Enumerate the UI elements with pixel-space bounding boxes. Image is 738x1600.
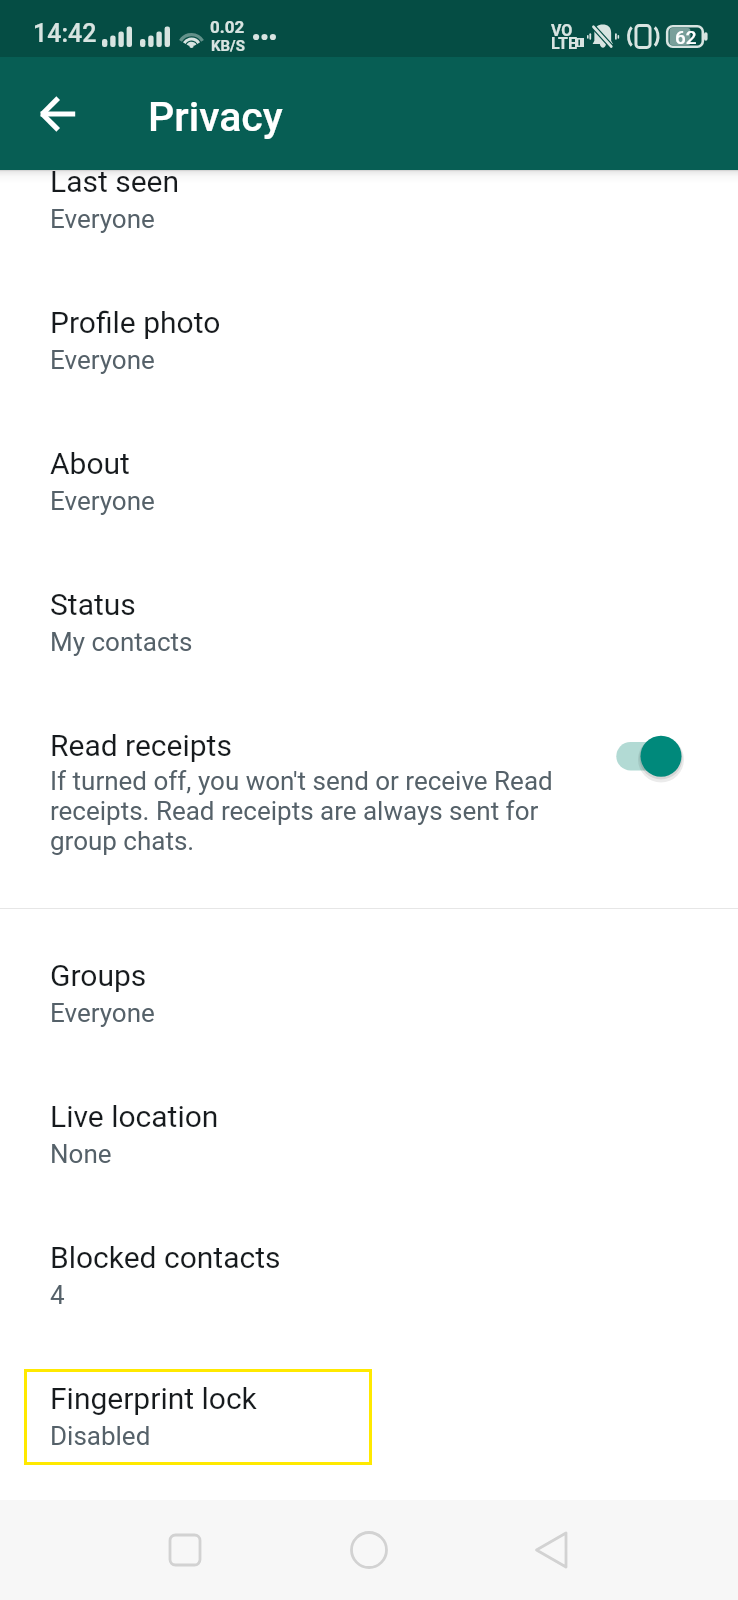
staticText: Disabled [50, 1421, 151, 1451]
staticText: Privacy [148, 93, 283, 141]
staticText: 62 [675, 26, 697, 48]
staticText: Blocked contacts [50, 1240, 281, 1275]
button[interactable]: Read receipts [0, 728, 738, 856]
staticText: 0.02 [210, 17, 245, 37]
button[interactable]: Blocked contacts [0, 1240, 738, 1310]
button[interactable]: Read receipts toggle [612, 728, 692, 784]
staticText: Everyone [50, 204, 155, 234]
staticText: Last seen [50, 164, 180, 199]
button[interactable]: Back [37, 74, 117, 154]
button[interactable]: Last seen [0, 164, 738, 234]
staticText: 4 [50, 1280, 65, 1310]
staticText: 14:42 [33, 19, 97, 48]
button[interactable]: Back [518, 1515, 588, 1585]
staticText: Groups [50, 958, 147, 993]
staticText: Read receipts [50, 728, 232, 763]
staticText: About [50, 446, 130, 481]
button[interactable]: About [0, 446, 738, 516]
button[interactable]: Live location [0, 1099, 738, 1169]
staticText: VO [551, 21, 573, 40]
staticText: If turned off, you won't send or receive… [50, 766, 558, 856]
staticText: Status [50, 587, 136, 622]
staticText: Everyone [50, 486, 155, 516]
staticText: My contacts [50, 627, 193, 657]
button[interactable]: Recent apps [150, 1515, 220, 1585]
staticText: LTE [551, 34, 577, 53]
button[interactable]: Home [334, 1515, 404, 1585]
button[interactable]: Status [0, 587, 738, 657]
staticText: Everyone [50, 998, 155, 1028]
button[interactable]: Groups [0, 958, 738, 1028]
staticText: Everyone [50, 345, 155, 375]
button[interactable]: Fingerprint lock [24, 1369, 372, 1465]
staticText: Profile photo [50, 305, 221, 340]
staticText: Fingerprint lock [50, 1381, 257, 1416]
staticText: None [50, 1139, 112, 1169]
staticText: KB/S [211, 37, 245, 55]
button[interactable]: Profile photo [0, 305, 738, 375]
staticText: Live location [50, 1099, 219, 1134]
